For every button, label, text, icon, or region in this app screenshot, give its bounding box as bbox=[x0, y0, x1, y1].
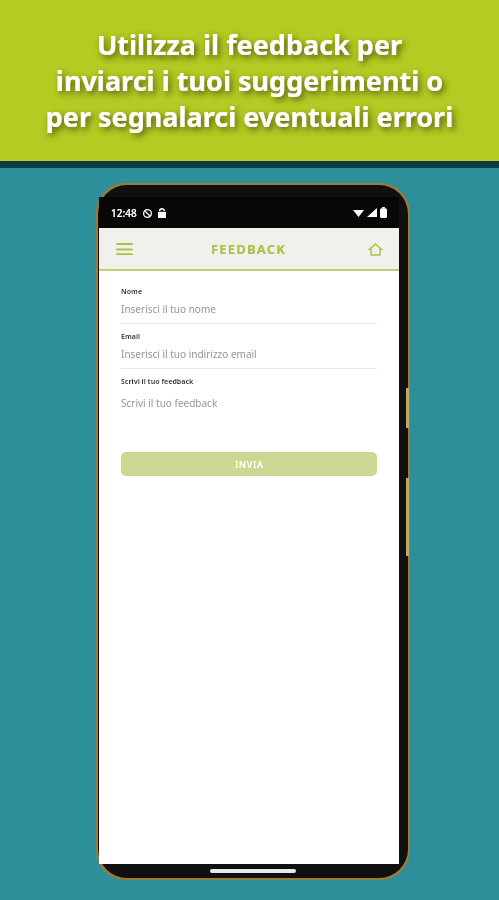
staticText: Inserisci il tuo nome bbox=[121, 302, 216, 316]
staticText: FEEDBACK bbox=[211, 240, 287, 258]
staticText: Email bbox=[121, 332, 141, 342]
button[interactable]: Menu bbox=[109, 234, 139, 264]
staticText: 12:48 bbox=[111, 206, 137, 220]
button[interactable]: Email bbox=[121, 332, 377, 368]
staticText: Utilizza il feedback per inviarci i tuoi… bbox=[6, 26, 493, 135]
button[interactable]: Scrivi il tuo feedback bbox=[121, 377, 377, 438]
button[interactable]: INVIA bbox=[121, 452, 377, 476]
button[interactable]: Nome bbox=[121, 287, 377, 323]
staticText: Scrivi il tuo feedback bbox=[121, 396, 218, 410]
staticText: Nome bbox=[121, 287, 143, 297]
staticText: Scrivi il tuo feedback bbox=[121, 377, 194, 387]
staticText: INVIA bbox=[235, 458, 264, 470]
button[interactable]: Home bbox=[361, 235, 389, 263]
staticText: Inserisci il tuo indirizzo email bbox=[121, 347, 257, 361]
